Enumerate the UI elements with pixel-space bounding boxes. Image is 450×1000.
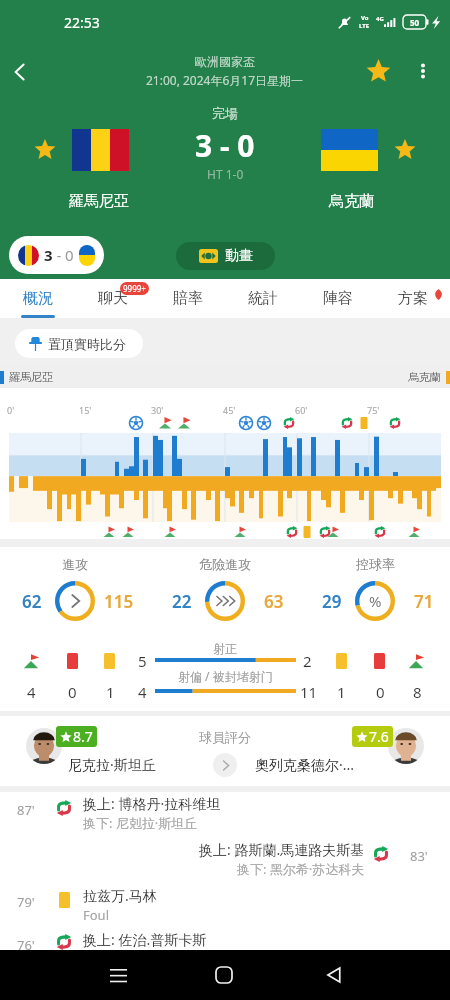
staticText: 21:00, 2024年6月17日星期一: [146, 72, 304, 88]
staticText: 置頂實時比分: [48, 336, 126, 352]
staticText: Foul: [83, 906, 110, 924]
staticText: 射正: [213, 641, 237, 656]
button[interactable]: Favourite: [360, 53, 396, 89]
staticText: 0: [65, 245, 74, 265]
button[interactable]: Recents: [94, 950, 142, 1000]
staticText: 2: [303, 651, 312, 671]
staticText: 完場: [212, 105, 238, 121]
staticText: 3: [44, 245, 53, 265]
staticText: 4G: [376, 15, 384, 23]
staticText: 换上: 佐治.普斯卡斯: [83, 930, 207, 949]
staticText: LTE: [359, 22, 370, 30]
staticText: 22: [172, 590, 192, 613]
staticText: HT 1-0: [207, 166, 244, 182]
staticText: 7.6: [369, 727, 389, 746]
staticText: 聊天: [98, 289, 128, 308]
button[interactable]: 統計: [225, 279, 300, 318]
staticText: 賠率: [173, 289, 203, 308]
button[interactable]: Home: [200, 950, 248, 1000]
staticText: 9999+: [123, 283, 146, 294]
staticText: 79': [17, 893, 35, 911]
staticText: 71: [414, 590, 434, 613]
staticText: 羅馬尼亞: [9, 370, 53, 384]
staticText: 22:53: [64, 13, 100, 32]
staticText: 60': [295, 404, 308, 416]
staticText: 29: [322, 590, 342, 613]
staticText: 75': [367, 404, 380, 416]
staticText: 0: [376, 682, 385, 702]
staticText: 87': [17, 801, 35, 819]
staticText: 方案: [398, 289, 428, 308]
staticText: 陣容: [323, 289, 353, 308]
button[interactable]: 聊天: [75, 279, 150, 318]
staticText: 動畫: [225, 247, 253, 265]
staticText: 11: [300, 682, 318, 702]
staticText: 烏克蘭: [329, 192, 374, 211]
staticText: -: [53, 246, 65, 265]
staticText: 射偏 / 被封堵射门: [178, 668, 273, 684]
staticText: 5: [138, 651, 147, 671]
button[interactable]: 79': [0, 884, 450, 930]
button[interactable]: Back: [0, 52, 40, 92]
button[interactable]: 概況: [0, 279, 75, 318]
staticText: 30': [151, 404, 164, 416]
button[interactable]: 賠率: [150, 279, 225, 318]
button[interactable]: 動畫: [176, 242, 275, 270]
staticText: 换上: 路斯蘭.馬連路夫斯基: [199, 840, 365, 859]
staticText: 45': [223, 404, 236, 416]
staticText: 1: [337, 682, 346, 702]
staticText: 危險進攻: [199, 556, 251, 572]
staticText: 烏克蘭: [408, 370, 441, 384]
staticText: 0': [7, 404, 15, 416]
staticText: 8: [413, 682, 422, 702]
staticText: 50: [410, 17, 420, 28]
staticText: %: [369, 591, 382, 611]
staticText: 115: [104, 590, 134, 613]
staticText: 拉兹万.马林: [83, 886, 157, 905]
staticText: 4: [27, 682, 36, 702]
staticText: 63: [264, 590, 284, 613]
staticText: 球員評分: [199, 729, 251, 745]
staticText: 换上: 博格丹·拉科维坦: [83, 794, 221, 813]
staticText: 0: [68, 682, 77, 702]
staticText: 4: [138, 682, 147, 702]
staticText: 概況: [23, 289, 53, 308]
staticText: 62: [22, 590, 42, 613]
staticText: 换下: 黑尔希·苏达科夫: [237, 860, 365, 878]
staticText: 1: [106, 682, 115, 702]
button[interactable]: 83': [0, 838, 450, 884]
staticText: 83': [410, 847, 428, 865]
button[interactable]: More ratings: [213, 753, 237, 777]
button[interactable]: 87': [0, 792, 450, 838]
staticText: 76': [17, 936, 35, 954]
button[interactable]: 陣容: [300, 279, 375, 318]
staticText: 8.7: [73, 727, 93, 746]
staticText: 進攻: [62, 556, 88, 572]
staticText: 統計: [248, 289, 278, 308]
staticText: 3 - 0: [195, 125, 255, 166]
staticText: Vo: [361, 14, 369, 22]
staticText: 控球率: [356, 556, 395, 572]
button[interactable]: 置頂實時比分: [15, 329, 143, 358]
staticText: 奧列克桑德尔·...: [255, 755, 355, 774]
staticText: 羅馬尼亞: [69, 192, 129, 211]
staticText: 尼克拉·斯坦丘: [68, 755, 156, 774]
staticText: 歐洲國家盃: [195, 54, 255, 69]
button[interactable]: 76': [0, 930, 450, 950]
button[interactable]: 方案: [375, 279, 450, 318]
button[interactable]: Back: [310, 950, 358, 1000]
button[interactable]: 3: [9, 236, 104, 274]
staticText: 15': [79, 404, 92, 416]
button[interactable]: More options: [405, 53, 441, 89]
staticText: 换下: 尼剋拉·斯坦丘: [83, 814, 198, 832]
